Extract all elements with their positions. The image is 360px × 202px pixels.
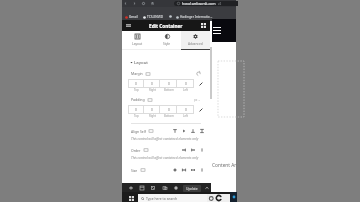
staticText: Gmail xyxy=(129,15,138,19)
button[interactable]: Order option 2 xyxy=(188,147,197,153)
staticText: Align Self xyxy=(131,129,146,134)
staticText: Right xyxy=(149,114,156,118)
button[interactable]: Size option 4 xyxy=(197,167,206,173)
staticText: TCS-ENVID xyxy=(147,15,164,19)
button[interactable]: Align Self option 4 xyxy=(197,128,206,134)
button[interactable]: Tool 1 xyxy=(125,183,136,193)
staticText: Top xyxy=(134,88,139,92)
staticText: Bottom xyxy=(164,114,174,118)
staticText: Update xyxy=(186,186,198,191)
staticText: 0 xyxy=(135,82,137,86)
button[interactable]: Start xyxy=(129,196,134,201)
button[interactable]: 0 xyxy=(144,79,160,88)
staticText: Left xyxy=(183,88,189,92)
button[interactable]: 0 xyxy=(177,79,194,88)
button[interactable]: 0 xyxy=(128,105,144,114)
button[interactable]: Size option 2 xyxy=(179,167,188,173)
button[interactable]: 0 xyxy=(144,105,160,114)
staticText: hoval.websorsk.com xyxy=(182,1,216,6)
staticText: Type here to search xyxy=(146,196,178,201)
button[interactable]: Tool 2 xyxy=(136,183,147,193)
staticText: Style xyxy=(163,42,171,46)
staticText: Right xyxy=(149,88,156,92)
staticText: Hadinger Internatio... xyxy=(180,15,213,19)
button[interactable]: Align Self option 1 xyxy=(170,128,179,134)
staticText: Content Ar xyxy=(212,162,237,169)
staticText: 0 xyxy=(185,82,187,86)
staticText: Top xyxy=(134,114,139,118)
button[interactable]: Size option 3 xyxy=(188,167,197,173)
staticText: v2 xyxy=(218,2,222,6)
staticText: Padding xyxy=(131,97,145,102)
button[interactable]: Tool 5 xyxy=(170,183,181,193)
button[interactable]: Tool 4 xyxy=(159,183,170,193)
button[interactable]: 0 xyxy=(160,105,177,114)
staticText: Left xyxy=(183,114,189,118)
button[interactable]: Site menu xyxy=(212,19,236,42)
staticText: 0 xyxy=(168,108,170,112)
staticText: px ⌄ xyxy=(194,98,201,102)
button[interactable]: hoval.websorsk.com xyxy=(174,1,238,6)
staticText: Bottom xyxy=(164,88,174,92)
staticText: 0 xyxy=(168,82,170,86)
button[interactable]: Layers xyxy=(201,23,206,28)
button[interactable]: Menu xyxy=(126,23,131,28)
staticText: Layout xyxy=(132,42,143,46)
staticText: Size xyxy=(131,168,138,173)
staticText: This control will affect contained eleme… xyxy=(131,156,199,160)
button[interactable]: Edit Padding xyxy=(194,105,208,114)
button[interactable]: Layout xyxy=(122,31,152,49)
button[interactable]: Size option 1 xyxy=(170,167,179,173)
button[interactable]: Style xyxy=(152,31,181,49)
button[interactable]: Order option 1 xyxy=(179,147,188,153)
button[interactable]: Tool 3 xyxy=(147,183,158,193)
button[interactable]: Advanced xyxy=(181,31,210,49)
staticText: Margin xyxy=(131,71,143,76)
button[interactable]: Order option 3 xyxy=(197,147,206,153)
staticText: Layout xyxy=(134,59,148,65)
staticText: 0 xyxy=(151,108,153,112)
button[interactable]: Update xyxy=(183,185,201,192)
staticText: This control will affect contained eleme… xyxy=(131,137,199,141)
button[interactable]: Align Self option 3 xyxy=(188,128,197,134)
button[interactable]: Collapse xyxy=(202,183,211,193)
staticText: Order xyxy=(131,148,141,153)
button[interactable]: 0 xyxy=(160,79,177,88)
button[interactable]: 0 xyxy=(128,79,144,88)
staticText: Edit Container xyxy=(149,23,183,29)
button[interactable]: Align Self option 2 xyxy=(179,128,188,134)
staticText: 0 xyxy=(185,108,187,112)
staticText: 0 xyxy=(151,82,153,86)
staticText: 0 xyxy=(135,108,137,112)
button[interactable]: Type here to search xyxy=(138,194,208,202)
button[interactable]: Edit Margin xyxy=(194,79,208,88)
staticText: Advanced xyxy=(188,42,203,46)
button[interactable]: 0 xyxy=(177,105,194,114)
